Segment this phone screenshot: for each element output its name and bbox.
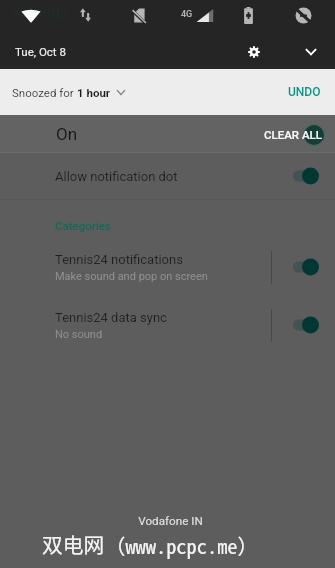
staticText: Make sound and pop on screen [55, 270, 208, 283]
staticText: 双电网 [42, 529, 105, 559]
staticText: CLEAR ALL [264, 128, 322, 141]
button[interactable]: Tennis24 data sync [0, 302, 335, 348]
staticText: Allow notification dot [55, 169, 178, 184]
button[interactable]: Toggle [293, 167, 319, 185]
staticText: Settings [11, 3, 68, 21]
staticText: UNDO [288, 85, 321, 99]
button[interactable]: Expand quick settings [296, 37, 325, 66]
staticText: No sound [55, 328, 103, 341]
staticText: 1 hour [77, 86, 111, 99]
staticText: Tue, Oct 8 [15, 45, 66, 58]
staticText: Snoozed for [12, 86, 77, 99]
button[interactable]: Tennis24 notifications [0, 244, 335, 290]
staticText: 4G [181, 9, 193, 20]
button[interactable]: Toggle [293, 258, 319, 276]
staticText: Categories [55, 219, 111, 232]
staticText: Vodafone IN [3, 514, 335, 528]
button[interactable]: Toggle [293, 316, 319, 334]
staticText: On [56, 124, 78, 144]
button[interactable]: Snoozed for [12, 86, 125, 99]
button[interactable]: Allow notification dot [0, 153, 335, 199]
button[interactable]: CLEAR ALL [258, 122, 328, 147]
button[interactable]: UNDO [282, 79, 327, 105]
staticText: （www.pcpc.me） [105, 530, 258, 560]
button[interactable]: Settings [239, 37, 268, 66]
staticText: Tennis24 notifications [55, 252, 183, 267]
staticText: Tennis24 data sync [55, 310, 167, 325]
